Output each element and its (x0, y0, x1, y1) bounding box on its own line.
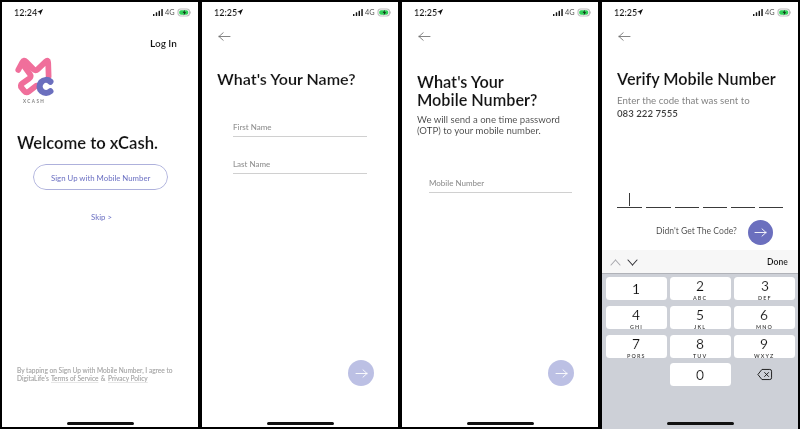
button[interactable]: 6 (734, 306, 795, 329)
staticText: 12:24 (14, 7, 38, 18)
staticText: 12:25 (214, 7, 238, 18)
button[interactable]: Next (348, 360, 374, 386)
staticText: Mobile Number (429, 178, 485, 188)
staticText: 2 (696, 277, 705, 294)
staticText: DEF (758, 295, 772, 300)
staticText: 4G (165, 8, 175, 17)
button[interactable]: 0 (670, 363, 731, 386)
button[interactable]: 5 (670, 306, 731, 329)
staticText: TUV (693, 353, 708, 358)
staticText: 1 (632, 280, 641, 297)
staticText: XCASH (23, 98, 46, 104)
staticText: Last Name (233, 159, 271, 169)
staticText: WXYZ (754, 353, 775, 358)
staticText: Log In (150, 37, 177, 49)
staticText: Welcome to xCash. (17, 133, 158, 153)
button[interactable]: Last Name (233, 159, 367, 174)
staticText: 4G (565, 8, 575, 17)
button[interactable]: Back (612, 24, 636, 48)
button[interactable]: Next (748, 220, 773, 245)
button[interactable]: 8 (670, 335, 731, 358)
staticText: 4G (365, 8, 375, 17)
staticText: 6 (760, 306, 769, 323)
button[interactable]: Log In (147, 34, 180, 52)
button[interactable]: Sign Up with Mobile Number (33, 164, 168, 190)
staticText: 8 (696, 335, 705, 352)
button[interactable]: 7 (606, 335, 667, 358)
button[interactable]: Mobile Number (429, 178, 572, 193)
staticText: 0 (696, 366, 705, 383)
staticText: First Name (233, 122, 272, 132)
staticText: 4 (632, 306, 641, 323)
staticText: 12:25 (614, 7, 638, 18)
button[interactable]: Back (212, 24, 236, 48)
staticText: PQRS (627, 353, 646, 358)
staticText: What's Your Name? (217, 69, 356, 88)
staticText: 7 (632, 335, 641, 352)
button[interactable]: Previous field (609, 256, 621, 268)
staticText: Skip > (91, 212, 112, 221)
staticText: ABC (693, 295, 708, 300)
staticText: Didn't Get The Code? (656, 226, 737, 236)
staticText: Enter the code that was sent to (617, 94, 750, 106)
staticText: DigitaLife's (17, 374, 51, 382)
staticText: Verify Mobile Number (617, 69, 776, 88)
button[interactable]: Back (412, 24, 436, 48)
staticText: 12:25 (414, 7, 438, 18)
staticText: Done (767, 257, 788, 267)
staticText: By tapping on Sign Up with Mobile Number… (17, 366, 173, 374)
button[interactable]: Done (765, 255, 790, 269)
staticText: MNO (756, 324, 773, 329)
button[interactable]: Next field (626, 256, 638, 268)
button[interactable]: 3 (734, 277, 795, 300)
staticText: 3 (761, 277, 770, 294)
button[interactable]: 1 (606, 277, 667, 300)
button[interactable]: 4 (606, 306, 667, 329)
button[interactable]: Skip > (88, 209, 115, 224)
button[interactable]: First Name (233, 122, 367, 137)
staticText: 5 (696, 306, 705, 323)
staticText: 9 (760, 335, 769, 352)
button[interactable]: Didn't Get The Code? (654, 224, 739, 238)
staticText: What's Your Mobile Number? (417, 72, 538, 110)
staticText: Sign Up with Mobile Number (51, 173, 151, 182)
staticText: 4G (765, 8, 775, 17)
button[interactable]: 2 (670, 277, 731, 300)
staticText: We will send a one time password (OTP) t… (417, 114, 560, 136)
staticText: 083 222 7555 (617, 107, 678, 119)
staticText: GHI (630, 324, 643, 329)
staticText: & (99, 374, 108, 382)
button[interactable]: Delete (734, 363, 795, 386)
button[interactable]: Next (548, 360, 574, 386)
staticText: Terms of Service (51, 374, 99, 382)
button[interactable]: 9 (734, 335, 795, 358)
staticText: Privacy Policy (108, 374, 148, 382)
staticText: JKL (694, 324, 707, 329)
